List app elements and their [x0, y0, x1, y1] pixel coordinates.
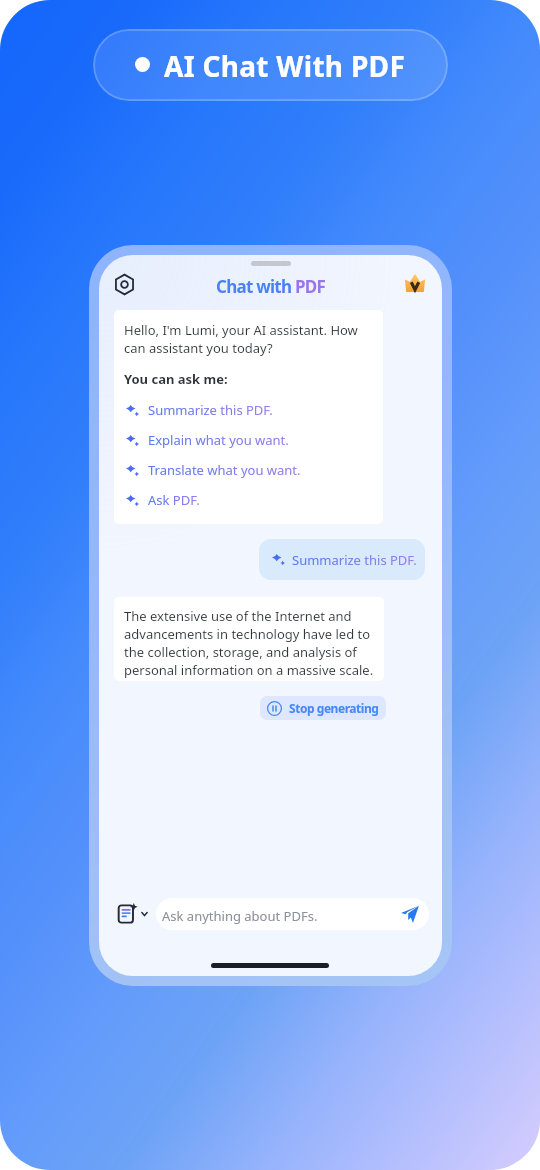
button[interactable]: Explain what you want. [124, 425, 383, 455]
button[interactable]: Premium [400, 269, 430, 299]
staticText: You can ask me: [124, 370, 228, 388]
button[interactable]: Summarize this PDF. [124, 395, 383, 425]
staticText: Chat with PDF [216, 275, 326, 298]
staticText: Summarize this PDF. [148, 401, 273, 419]
button[interactable]: Ask anything about PDFs. [156, 898, 429, 930]
button[interactable]: Ask PDF. [124, 485, 383, 515]
button[interactable]: Translate what you want. [124, 455, 383, 485]
staticText: Stop generating [289, 700, 379, 716]
staticText: AI Chat With PDF [164, 47, 406, 85]
button[interactable]: Settings [109, 269, 139, 299]
staticText: Ask PDF. [148, 491, 200, 509]
staticText: Translate what you want. [148, 461, 301, 479]
staticText: Explain what you want. [148, 431, 289, 449]
button[interactable]: Stop generating [260, 696, 386, 720]
button[interactable]: Send [399, 903, 421, 925]
button[interactable]: Summarize this PDF. [259, 539, 425, 580]
staticText: Ask anything about PDFs. [162, 907, 318, 925]
button[interactable]: Choose document [114, 898, 152, 930]
staticText: Hello, I'm Lumi, your AI assistant. How … [124, 321, 373, 357]
staticText: The extensive use of the Internet and ad… [124, 607, 374, 679]
button[interactable]: AI Chat With PDF [93, 29, 448, 101]
staticText: Summarize this PDF. [292, 551, 417, 569]
